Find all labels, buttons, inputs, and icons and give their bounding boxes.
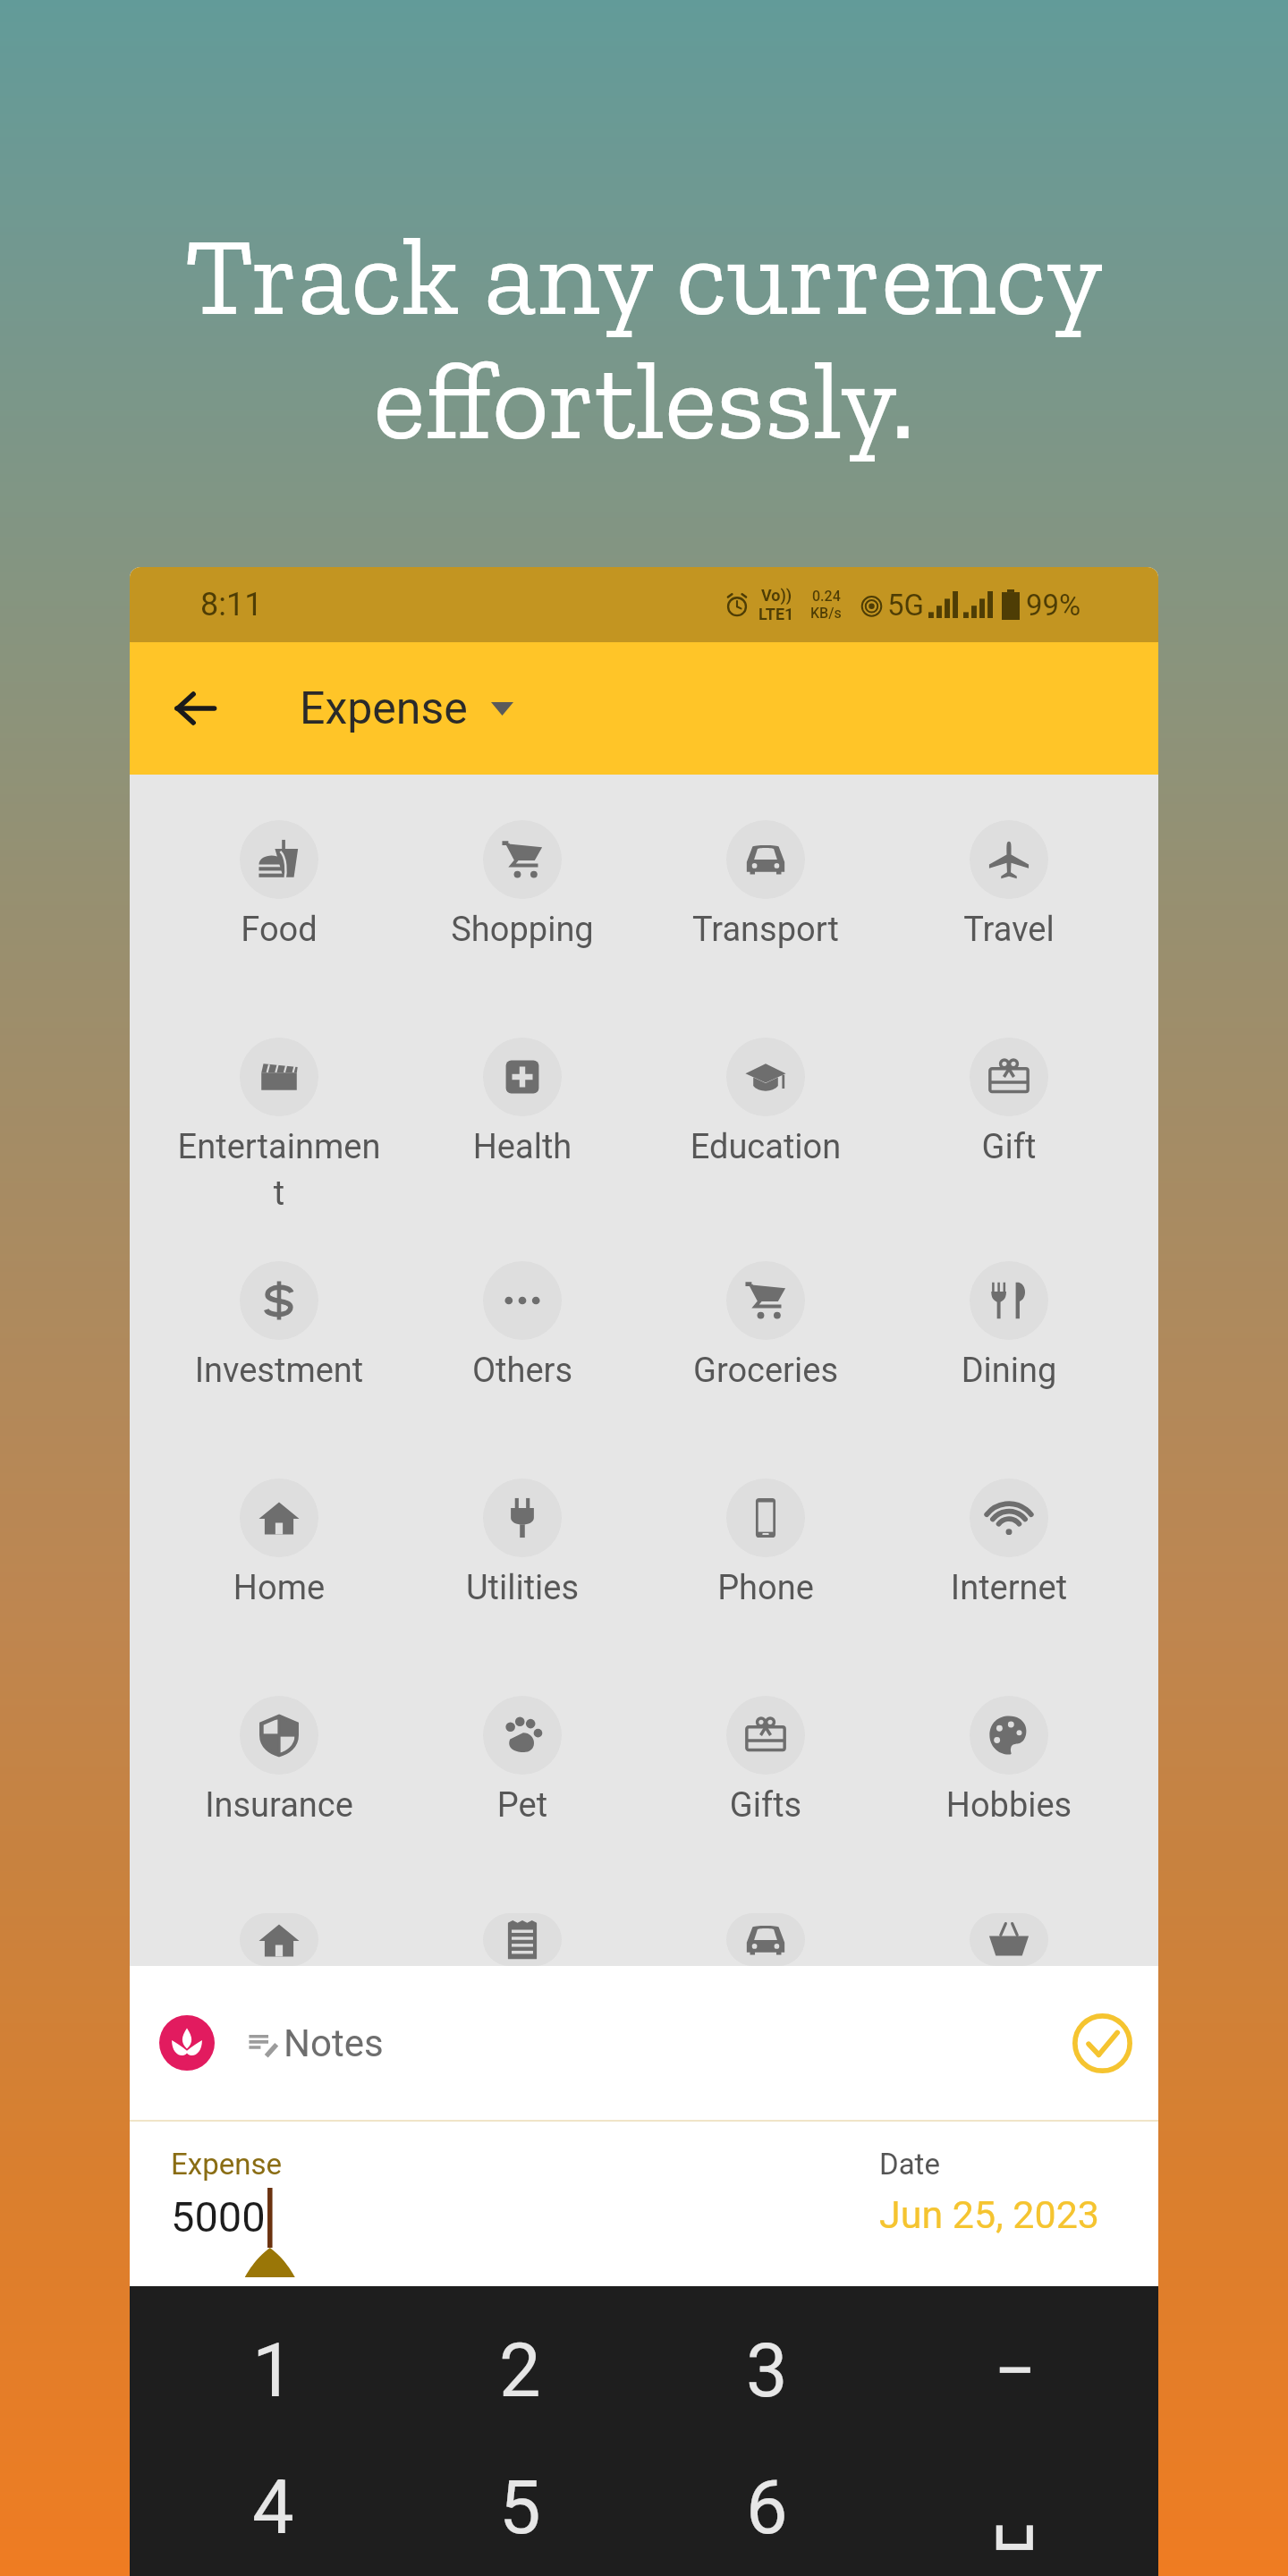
button[interactable]: Gifts [644,1682,887,1899]
staticText: Track any currency effortlessly. [0,210,1288,467]
staticText: Entertainment [175,1127,383,1213]
staticText: Vo)) [761,586,792,605]
staticText: Travel [905,910,1113,950]
staticText: 0.24 [812,588,841,605]
button[interactable]: Phone [644,1464,887,1682]
button[interactable]: Car [644,1899,887,1966]
staticText: Date [879,2147,940,2182]
button[interactable]: 1 [149,2302,396,2439]
staticText: Notes [284,2021,384,2065]
button[interactable]: Bills [401,1899,644,1966]
staticText: Shopping [419,910,626,950]
staticText: Internet [905,1568,1113,1608]
button[interactable]: Dining [887,1247,1131,1464]
staticText: Expense [300,682,468,735]
button[interactable]: 4 [149,2439,396,2576]
button[interactable]: Home [157,1464,401,1682]
staticText: 5 [499,2464,541,2551]
staticText: 99% [1026,588,1081,623]
staticText: 1 [252,2327,294,2414]
staticText: Gifts [662,1785,869,1826]
button[interactable]: Others [401,1247,644,1464]
button[interactable]: Date [879,2147,1099,2237]
button[interactable]: Home [157,1899,401,1966]
staticText: Others [419,1351,626,1391]
staticText: Utilities [419,1568,626,1608]
staticText: 4 [252,2464,294,2551]
button[interactable]: Entertainment [157,1023,401,1247]
staticText: Insurance [175,1785,383,1826]
staticText: Pet [419,1785,626,1826]
button[interactable]: Education [644,1023,887,1247]
button[interactable]: Pet [401,1682,644,1899]
staticText: 2 [499,2327,541,2414]
button[interactable]: Travel [887,806,1131,1023]
staticText: Investment [175,1351,383,1391]
button[interactable]: Shopping [401,806,644,1023]
staticText: Phone [662,1568,869,1608]
staticText: 5000 [171,2192,266,2241]
button[interactable]: Food [157,806,401,1023]
staticText: Education [662,1127,869,1167]
staticText: Health [419,1127,626,1167]
button[interactable]: ␣ [891,2439,1139,2576]
staticText: 6 [746,2464,788,2551]
staticText: Home [175,1568,383,1608]
staticText: Expense [171,2147,282,2182]
staticText: Hobbies [905,1785,1113,1826]
button[interactable]: 5 [396,2439,643,2576]
button[interactable]: Wallet logo [159,2015,215,2071]
staticText: KB/s [810,605,842,622]
button[interactable]: Internet [887,1464,1131,1682]
staticText: Dining [905,1351,1113,1391]
staticText: Gift [905,1127,1113,1167]
button[interactable]: − [891,2302,1139,2439]
staticText: Food [175,910,383,950]
button[interactable]: 2 [396,2302,643,2439]
button[interactable]: Insurance [157,1682,401,1899]
button[interactable]: Hobbies [887,1682,1131,1899]
staticText: 3 [746,2327,788,2414]
button[interactable]: Notes [248,1966,1063,2120]
button[interactable]: Back [150,664,240,753]
staticText: Jun 25, 2023 [879,2192,1099,2237]
staticText: LTE1 [758,605,794,623]
button[interactable]: Utilities [401,1464,644,1682]
staticText: ␣ [991,2464,1038,2551]
button[interactable]: Investment [157,1247,401,1464]
button[interactable]: Transport [644,806,887,1023]
button[interactable]: Health [401,1023,644,1247]
button[interactable]: Expense [300,682,513,735]
staticText: 8:11 [200,586,263,623]
staticText: 5G [887,588,925,623]
button[interactable]: Gift [887,1023,1131,1247]
button[interactable]: Expense [171,2147,879,2241]
button[interactable]: Basket [887,1899,1131,1966]
button[interactable]: Groceries [644,1247,887,1464]
staticText: Transport [662,910,869,950]
button[interactable]: 3 [643,2302,891,2439]
button[interactable]: 6 [643,2439,891,2576]
staticText: Groceries [662,1351,869,1391]
staticText: − [994,2327,1037,2414]
button[interactable]: Confirm [1063,2004,1140,2081]
